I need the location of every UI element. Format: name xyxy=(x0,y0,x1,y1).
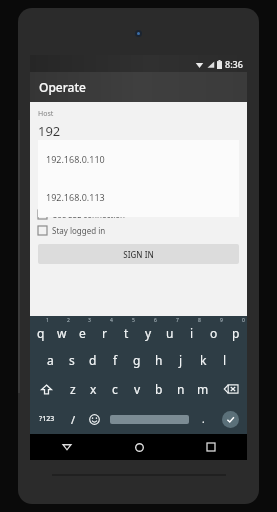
staticText: l xyxy=(223,352,227,368)
staticText: i xyxy=(190,325,194,341)
staticText: o xyxy=(210,325,218,341)
staticText: w xyxy=(57,325,67,341)
staticText: n xyxy=(177,381,185,397)
button[interactable]: 192.168.0.110 xyxy=(38,140,239,178)
button[interactable]: Space xyxy=(105,404,193,434)
staticText: SIGN IN xyxy=(123,249,154,260)
staticText: ?123 xyxy=(39,414,55,424)
button[interactable]: f xyxy=(104,345,126,374)
button[interactable]: b xyxy=(148,374,170,404)
staticText: / xyxy=(71,412,76,427)
button[interactable]: a xyxy=(40,345,61,374)
staticText: 7 xyxy=(176,317,179,324)
button[interactable]: l xyxy=(214,345,236,374)
staticText: 3 xyxy=(88,317,91,324)
staticText: Host xyxy=(38,109,54,119)
staticText: y xyxy=(145,325,152,341)
staticText: 192 xyxy=(38,122,61,140)
button[interactable]: / xyxy=(63,404,84,434)
staticText: c xyxy=(112,381,118,397)
staticText: v xyxy=(134,381,141,397)
button[interactable]: z xyxy=(62,374,83,404)
button[interactable]: Home xyxy=(103,434,175,460)
button[interactable]: r xyxy=(93,316,115,345)
staticText: f xyxy=(113,352,118,368)
button[interactable]: 192.168.0.113 xyxy=(38,178,239,216)
staticText: Operate xyxy=(39,79,86,95)
button[interactable]: u xyxy=(159,316,181,345)
staticText: 192.168.0.110 xyxy=(46,153,105,165)
button[interactable]: d xyxy=(82,345,104,374)
button[interactable]: g xyxy=(126,345,148,374)
button[interactable]: n xyxy=(170,374,192,404)
button[interactable]: Stay logged in xyxy=(38,225,239,236)
staticText: g xyxy=(133,352,141,368)
button[interactable]: q xyxy=(30,316,51,345)
staticText: 4 xyxy=(110,317,113,324)
staticText: q xyxy=(37,325,45,341)
button[interactable]: . xyxy=(193,404,214,434)
staticText: u xyxy=(166,325,174,341)
button[interactable]: SIGN IN xyxy=(38,244,239,264)
button[interactable]: v xyxy=(126,374,148,404)
staticText: a xyxy=(47,352,54,368)
staticText: h xyxy=(155,352,163,368)
button[interactable]: e xyxy=(72,316,93,345)
button[interactable]: ?123 xyxy=(30,404,63,434)
button[interactable]: Emoji xyxy=(84,404,105,434)
button[interactable]: Enter xyxy=(214,404,247,434)
staticText: e xyxy=(79,325,86,341)
staticText: d xyxy=(89,352,97,368)
button[interactable]: y xyxy=(137,316,159,345)
button[interactable]: c xyxy=(104,374,126,404)
staticText: 8:36 xyxy=(225,58,243,70)
button[interactable]: Back xyxy=(30,434,103,460)
staticText: b xyxy=(155,381,163,397)
button[interactable]: k xyxy=(192,345,214,374)
staticText: 192.168.0.113 xyxy=(46,191,105,203)
staticText: p xyxy=(232,325,240,341)
staticText: 2 xyxy=(67,317,70,324)
staticText: 8 xyxy=(198,317,201,324)
button[interactable]: w xyxy=(51,316,72,345)
staticText: 1 xyxy=(46,317,49,324)
button[interactable]: o xyxy=(203,316,225,345)
staticText: 0 xyxy=(242,317,245,324)
button[interactable]: i xyxy=(181,316,203,345)
button[interactable]: Backspace xyxy=(214,374,247,404)
staticText: Stay logged in xyxy=(52,225,106,236)
button[interactable]: s xyxy=(61,345,82,374)
button[interactable]: Use SSL connection xyxy=(38,209,239,220)
staticText: 9 xyxy=(220,317,223,324)
staticText: Use SSL connection xyxy=(52,209,125,220)
button[interactable]: m xyxy=(192,374,214,404)
staticText: m xyxy=(197,381,209,397)
button[interactable]: Recents xyxy=(175,434,247,460)
staticText: r xyxy=(102,325,107,341)
button[interactable]: Shift xyxy=(30,374,62,404)
staticText: s xyxy=(69,352,75,368)
button[interactable]: t xyxy=(115,316,137,345)
staticText: . xyxy=(202,412,205,426)
staticText: k xyxy=(200,352,207,368)
staticText: 6 xyxy=(154,317,157,324)
staticText: j xyxy=(179,352,183,368)
staticText: z xyxy=(70,381,76,397)
button[interactable]: h xyxy=(148,345,170,374)
button[interactable]: x xyxy=(83,374,104,404)
button[interactable]: p xyxy=(225,316,247,345)
staticText: t xyxy=(124,325,129,341)
staticText: x xyxy=(90,381,97,397)
staticText: 5 xyxy=(132,317,135,324)
button[interactable]: j xyxy=(170,345,192,374)
